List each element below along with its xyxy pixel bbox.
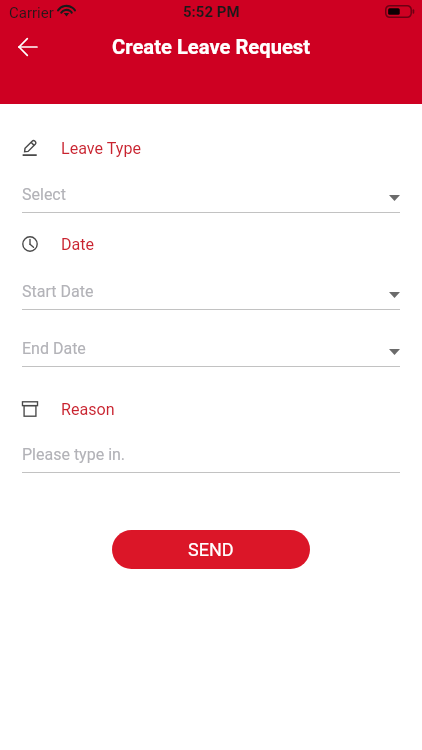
other: Battery: [385, 5, 416, 18]
staticText: SEND: [188, 539, 234, 560]
staticText: Please type in.: [22, 445, 126, 464]
button[interactable]: Please type in.: [22, 438, 400, 473]
staticText: Select: [22, 185, 66, 204]
staticText: End Date: [22, 339, 86, 358]
button[interactable]: Select: [22, 178, 400, 213]
button[interactable]: Back: [10, 29, 46, 65]
staticText: Create Leave Request: [112, 35, 311, 59]
staticText: Leave Type: [61, 139, 141, 158]
staticText: 5:52 PM: [183, 3, 240, 21]
staticText: Carrier: [9, 4, 54, 22]
button[interactable]: SEND: [112, 530, 310, 569]
button[interactable]: Reason: [22, 398, 400, 420]
staticText: Date: [61, 235, 95, 254]
button[interactable]: Leave Type: [22, 137, 400, 159]
button[interactable]: End Date: [22, 332, 400, 367]
button[interactable]: Start Date: [22, 275, 400, 310]
staticText: Reason: [61, 400, 115, 419]
staticText: Start Date: [22, 282, 94, 301]
other: Wi-Fi signal: [58, 5, 75, 16]
button[interactable]: Date: [22, 233, 400, 255]
